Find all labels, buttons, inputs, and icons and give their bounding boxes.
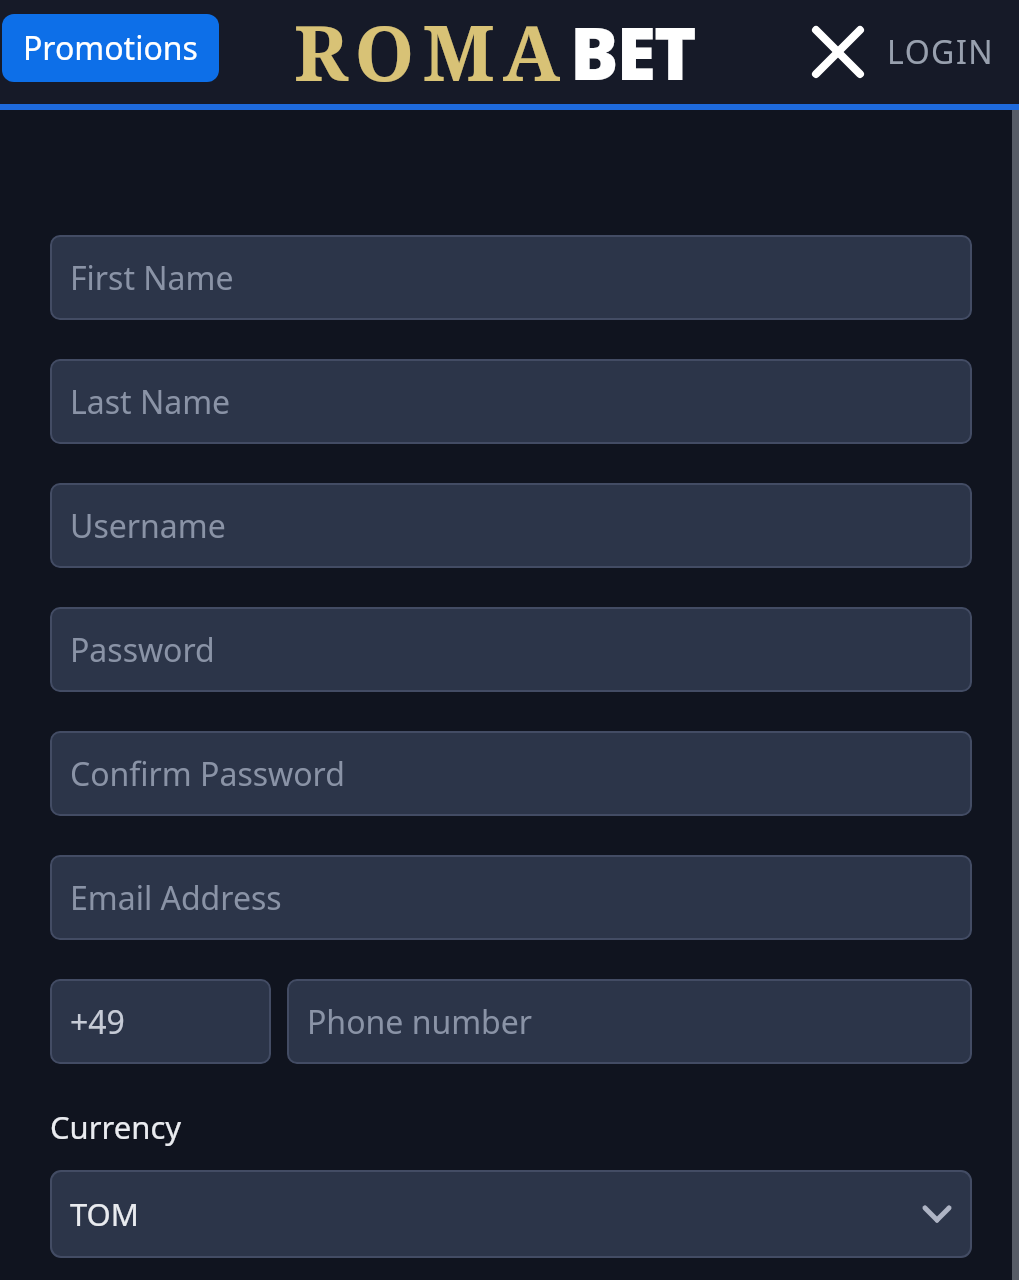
- button[interactable]: Username: [50, 483, 972, 568]
- staticText: Username: [70, 504, 226, 548]
- button[interactable]: Password: [50, 607, 972, 692]
- button[interactable]: +49: [50, 979, 271, 1064]
- button[interactable]: Phone number: [287, 979, 972, 1064]
- staticText: Promotions: [23, 26, 198, 70]
- button[interactable]: [808, 22, 868, 82]
- staticText: LOGIN: [887, 30, 995, 74]
- staticText: Confirm Password: [70, 752, 345, 796]
- staticText: Password: [70, 628, 215, 672]
- staticText: BET: [570, 3, 695, 101]
- staticText: Last Name: [70, 380, 231, 424]
- button[interactable]: Last Name: [50, 359, 972, 444]
- staticText: Currency: [50, 1106, 182, 1148]
- button[interactable]: TOM: [50, 1170, 972, 1258]
- staticText: +49: [70, 1000, 125, 1044]
- button[interactable]: First Name: [50, 235, 972, 320]
- button[interactable]: Confirm Password: [50, 731, 972, 816]
- button[interactable]: Promotions: [2, 14, 219, 82]
- button[interactable]: Email Address: [50, 855, 972, 940]
- staticText: Phone number: [307, 1000, 533, 1044]
- staticText: Email Address: [70, 876, 282, 920]
- staticText: ROMA: [294, 0, 568, 104]
- staticText: First Name: [70, 256, 234, 300]
- staticText: TOM: [70, 1193, 139, 1235]
- button[interactable]: LOGIN: [887, 30, 995, 74]
